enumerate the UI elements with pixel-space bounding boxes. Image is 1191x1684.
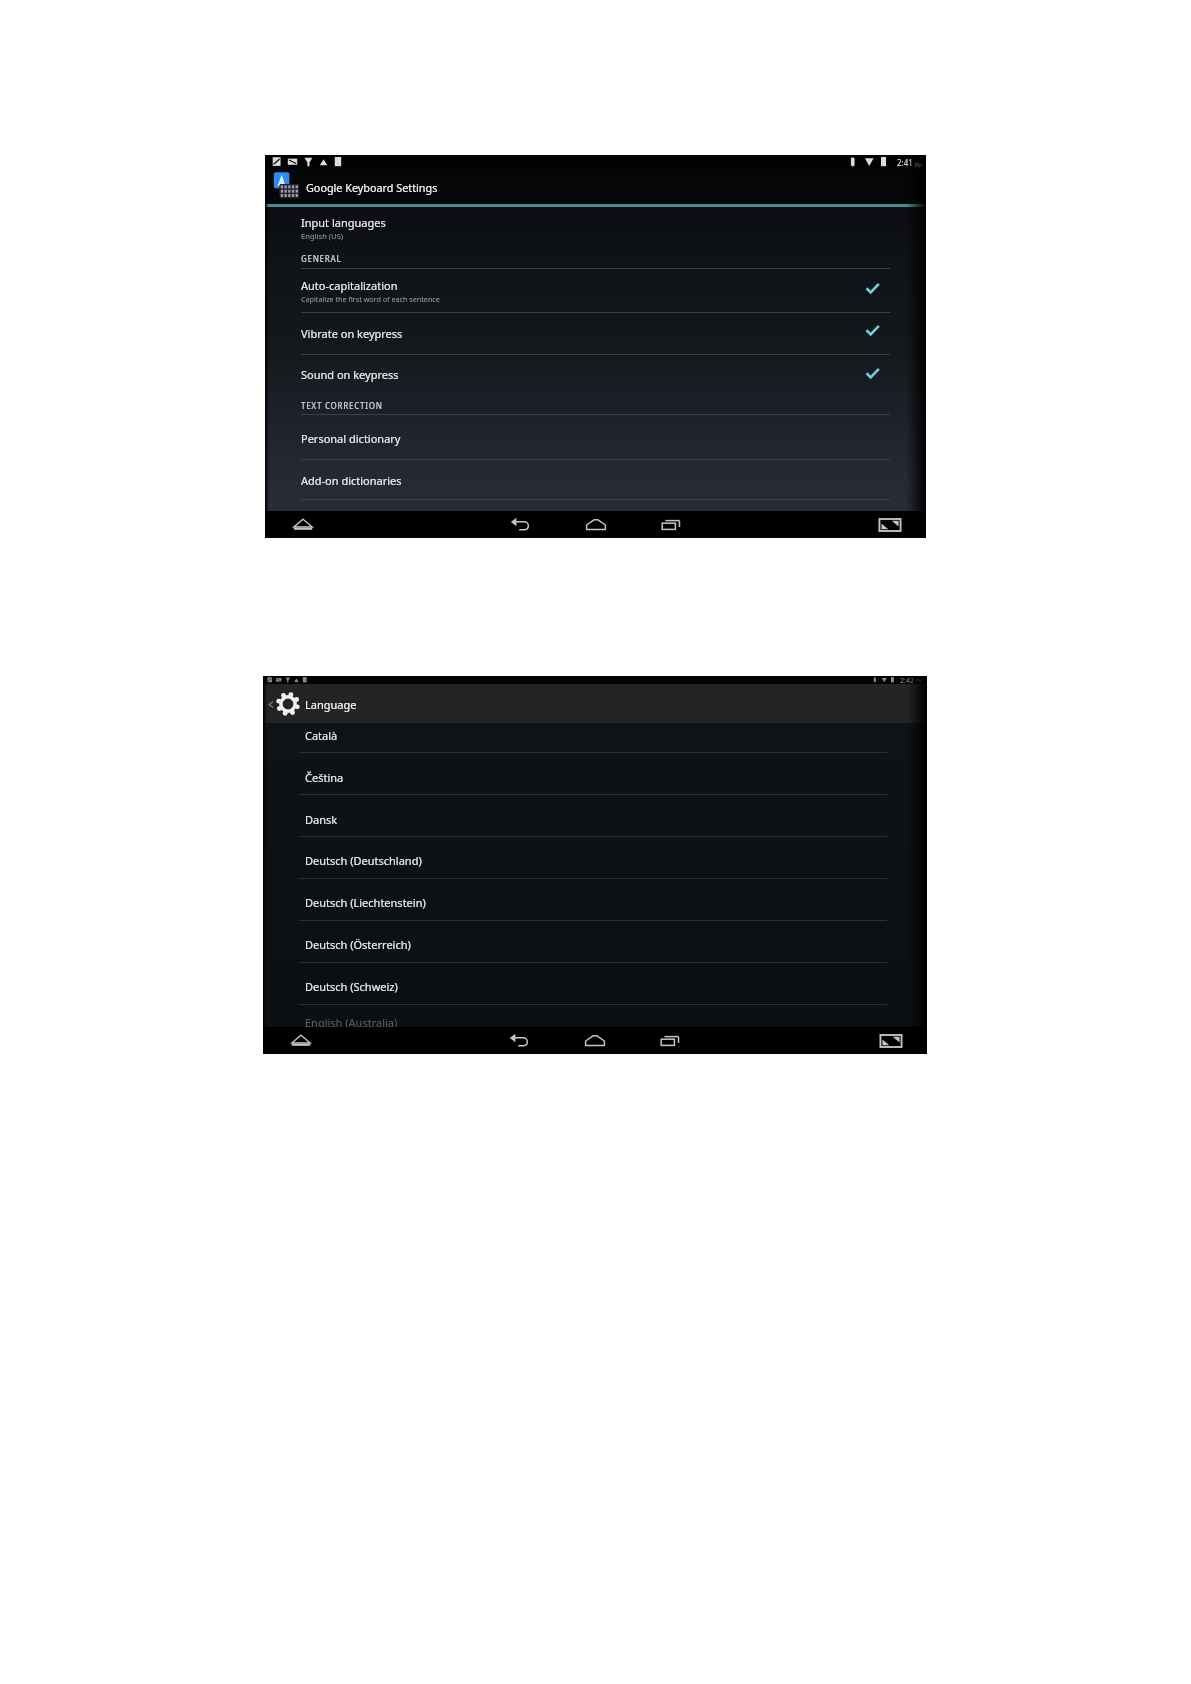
staticText: Dansk	[305, 812, 338, 827]
staticText: Deutsch (Schweiz)	[305, 979, 398, 994]
button[interactable]: Back	[509, 1031, 529, 1051]
button[interactable]: Home	[586, 515, 606, 535]
button[interactable]: Eject	[293, 515, 313, 535]
button[interactable]	[263, 807, 927, 849]
button[interactable]	[263, 974, 927, 1016]
staticText: Deutsch (Deutschland)	[305, 853, 422, 868]
staticText: 2:41	[897, 157, 913, 168]
other: Back	[266, 700, 275, 709]
staticText: Deutsch (Österreich)	[305, 937, 411, 952]
staticText: Sound on keypress	[301, 367, 399, 382]
button[interactable]	[265, 268, 926, 312]
staticText: English (US)	[301, 231, 344, 241]
staticText: Deutsch (Liechtenstein)	[305, 895, 426, 910]
button[interactable]: Back	[263, 684, 927, 724]
button[interactable]: Google Keyboard Settings	[265, 169, 926, 204]
button[interactable]	[263, 933, 927, 975]
staticText: Català	[305, 728, 338, 743]
button[interactable]: Screenshot	[880, 1031, 902, 1051]
button[interactable]: Recent apps	[661, 515, 681, 535]
button[interactable]	[263, 723, 927, 765]
button[interactable]: Eject	[291, 1031, 311, 1051]
staticText: Vibrate on keypress	[301, 326, 403, 341]
button[interactable]	[265, 415, 926, 459]
button[interactable]	[265, 209, 926, 242]
button[interactable]: English (Australia)	[263, 1014, 927, 1027]
button[interactable]	[263, 765, 927, 807]
staticText: Capitalize the first word of each senten…	[301, 294, 440, 304]
button[interactable]	[265, 355, 926, 399]
button[interactable]	[263, 849, 927, 891]
button[interactable]: Back	[510, 515, 530, 535]
button[interactable]: Recent apps	[660, 1031, 680, 1051]
staticText: Input languages	[301, 215, 386, 230]
staticText: Auto-capitalization	[301, 278, 398, 293]
staticText: English (Australia)	[305, 1015, 398, 1028]
button[interactable]	[265, 460, 926, 500]
staticText: PM	[915, 162, 922, 168]
staticText: 2:42	[900, 676, 914, 684]
staticText: GENERAL	[301, 253, 342, 264]
staticText: Google Keyboard Settings	[306, 180, 438, 195]
staticText: TEXT CORRECTION	[301, 400, 383, 411]
button[interactable]: Screenshot	[879, 515, 901, 535]
staticText: Čeština	[305, 770, 344, 785]
button[interactable]	[265, 313, 926, 354]
staticText: Personal dictionary	[301, 431, 401, 446]
staticText: PM	[916, 678, 923, 684]
staticText: Add-on dictionaries	[301, 473, 402, 488]
button[interactable]: Home	[585, 1031, 605, 1051]
staticText: Language	[305, 697, 357, 712]
button[interactable]	[263, 891, 927, 933]
